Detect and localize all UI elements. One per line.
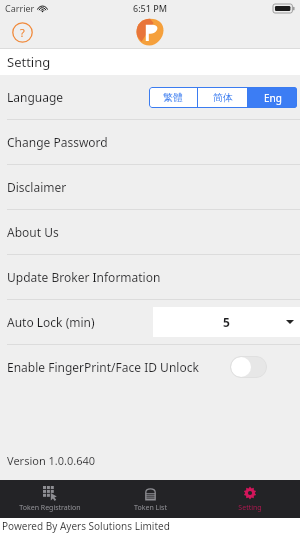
staticText: Enable FingerPrint/Face ID Unlock (7, 359, 199, 375)
staticText: Change Password (7, 134, 108, 150)
button[interactable]: Logo (135, 17, 165, 47)
staticText: Token List (134, 503, 167, 513)
staticText: Token Registration (19, 503, 81, 513)
button[interactable]: About Us (0, 210, 300, 254)
staticText: Disclaimer (7, 179, 67, 195)
staticText: Version 1.0.0.640 (7, 453, 96, 468)
button[interactable]: Eng (248, 87, 297, 108)
button[interactable]: Setting (200, 480, 300, 518)
button[interactable]: Enable FingerPrint or Face ID Unlock (230, 356, 267, 378)
staticText: Setting (7, 53, 51, 71)
button[interactable]: 简体 (198, 87, 247, 108)
button[interactable]: Update Broker Information (0, 255, 300, 299)
staticText: Auto Lock (min) (7, 314, 95, 330)
staticText: Update Broker Information (7, 269, 161, 285)
button[interactable]: Token Registration (0, 480, 100, 518)
staticText: ? (20, 25, 25, 40)
staticText: Eng (264, 91, 282, 105)
staticText: Language (7, 89, 64, 105)
staticText: 6:51 PM (133, 2, 167, 14)
staticText: Powered By Ayers Solutions Limited (2, 519, 170, 533)
button[interactable]: Disclaimer (0, 165, 300, 209)
button[interactable]: Help (12, 22, 33, 43)
button[interactable]: Token List (100, 480, 200, 518)
button[interactable]: Auto lock duration (153, 307, 300, 337)
staticText: About Us (7, 224, 59, 240)
staticText: 简体 (213, 91, 233, 104)
staticText: 繁體 (163, 91, 183, 104)
button[interactable]: Change Password (0, 120, 300, 164)
staticText: 5 (223, 314, 230, 330)
staticText: Setting (238, 503, 262, 513)
button[interactable]: 繁體 (149, 87, 197, 108)
staticText: Carrier (5, 2, 35, 14)
